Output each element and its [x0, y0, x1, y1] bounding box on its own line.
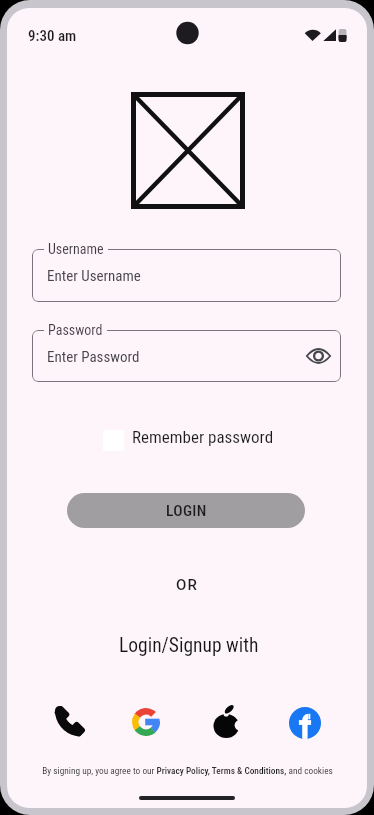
- button[interactable]: [132, 708, 160, 736]
- button[interactable]: [53, 706, 85, 738]
- staticText: Password: [48, 322, 103, 338]
- staticText: By signing up, you agree to our Privacy …: [42, 765, 333, 776]
- button[interactable]: [32, 249, 341, 302]
- staticText: LOGIN: [166, 502, 207, 520]
- staticText: Login/Signup with: [119, 634, 259, 657]
- staticText: 9:30 am: [28, 27, 77, 45]
- button[interactable]: [32, 330, 341, 382]
- button[interactable]: [306, 347, 331, 365]
- button[interactable]: LOGIN: [67, 493, 305, 528]
- staticText: Remember password: [132, 427, 274, 447]
- staticText: Username: [48, 241, 104, 257]
- button[interactable]: Remember password: [95, 422, 285, 458]
- button[interactable]: [289, 707, 321, 739]
- staticText: Enter Username: [47, 267, 141, 285]
- staticText: OR: [176, 576, 199, 594]
- staticText: Enter Password: [47, 348, 140, 366]
- button[interactable]: [213, 704, 240, 739]
